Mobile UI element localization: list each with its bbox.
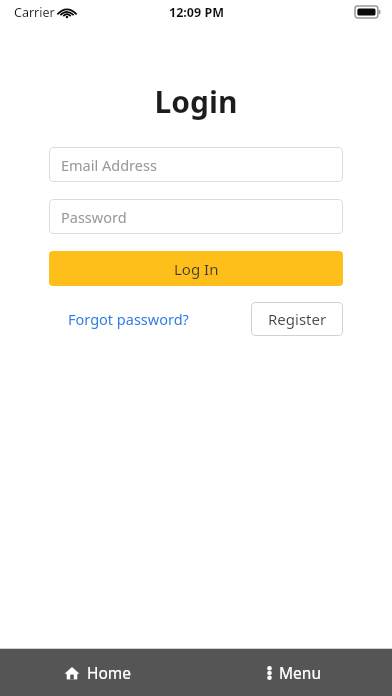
staticText: Carrier — [14, 4, 55, 21]
staticText: Email Address — [61, 155, 157, 175]
staticText: Forgot password? — [68, 309, 189, 329]
button[interactable]: Password — [49, 199, 343, 234]
button[interactable]: Log In — [49, 251, 343, 286]
staticText: Home — [87, 662, 132, 683]
button[interactable]: Email Address — [49, 147, 343, 182]
staticText: 12:09 PM — [169, 4, 224, 21]
other: Home — [64, 665, 80, 681]
staticText: Password — [61, 207, 127, 227]
button[interactable]: Forgot password? — [68, 309, 189, 329]
button[interactable]: Home — [0, 649, 196, 696]
staticText: Register — [268, 309, 327, 329]
staticText: Log In — [174, 259, 219, 279]
other: Menu — [267, 665, 272, 681]
button[interactable]: Menu — [196, 649, 392, 696]
button[interactable]: Register — [251, 302, 343, 336]
staticText: Login — [0, 81, 392, 122]
staticText: Menu — [279, 662, 321, 683]
